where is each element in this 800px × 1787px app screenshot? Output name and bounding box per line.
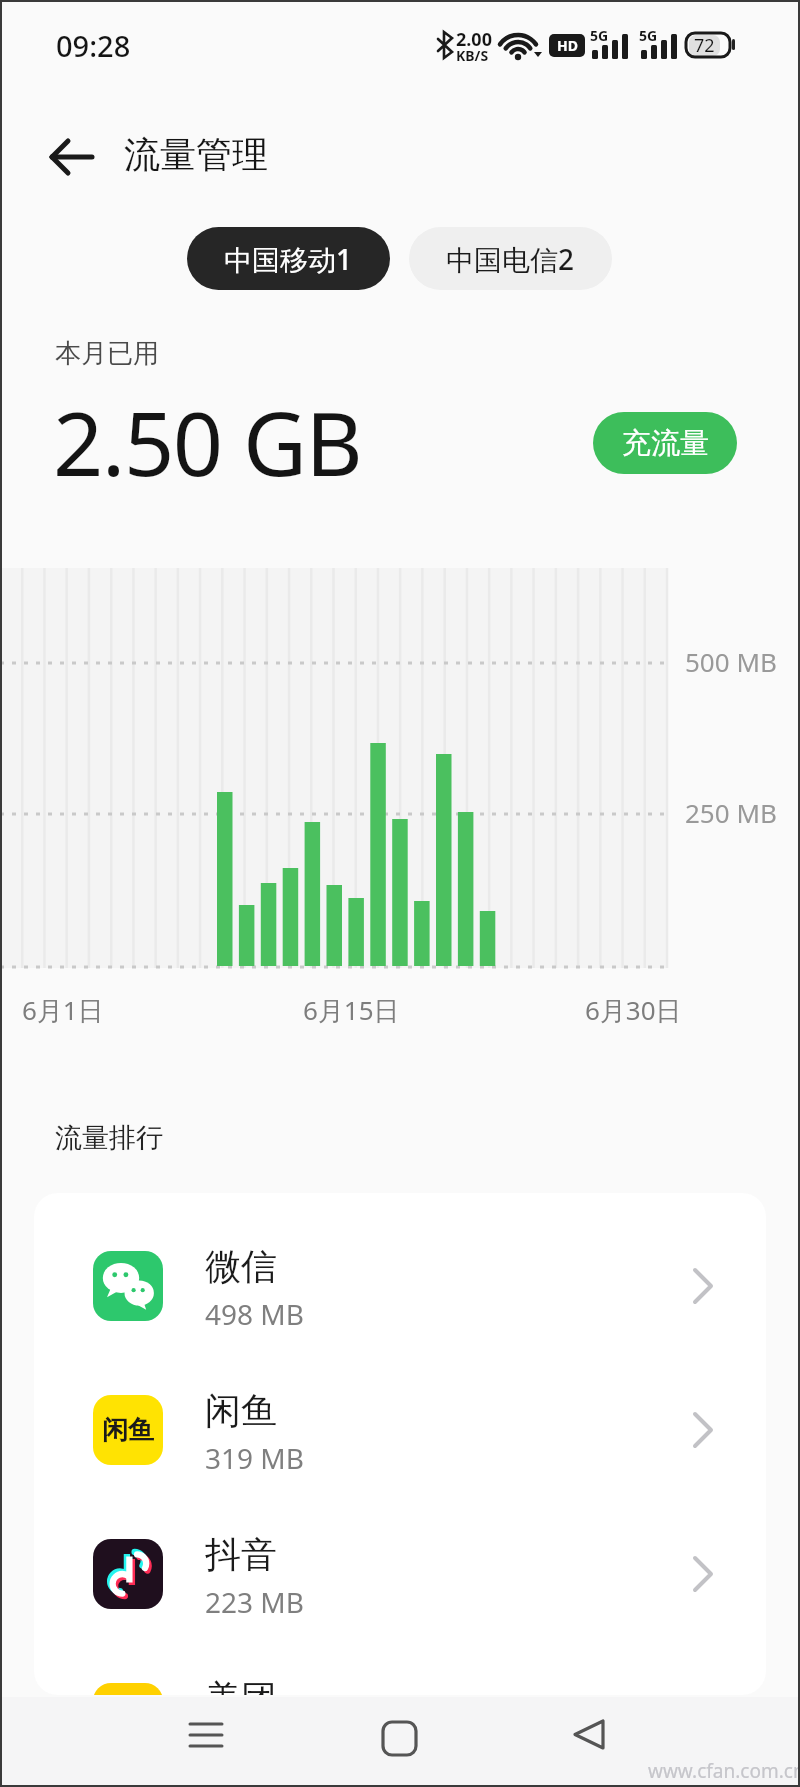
staticText: 498 MB <box>205 1295 304 1333</box>
staticText: 美团 <box>205 1676 277 1695</box>
button[interactable]: 中国移动1 <box>187 227 390 290</box>
staticText: 流量管理 <box>124 132 268 177</box>
staticText: 本月已用 <box>55 337 159 370</box>
button[interactable] <box>383 1717 416 1755</box>
staticText: 250 MB <box>685 795 777 830</box>
staticText: 2.00 <box>456 27 492 52</box>
button[interactable]: 微信 <box>34 1214 766 1358</box>
staticText: 223 MB <box>205 1583 304 1621</box>
staticText: 5G <box>639 26 658 45</box>
button[interactable]: 抖音 <box>34 1502 766 1646</box>
staticText: 闲鱼 <box>102 1414 154 1447</box>
button[interactable]: 中国电信2 <box>409 227 612 290</box>
staticText: 流量排行 <box>55 1121 163 1155</box>
staticText: 充流量 <box>622 425 709 462</box>
staticText: 72 <box>694 33 715 58</box>
button[interactable]: 充流量 <box>593 412 737 474</box>
staticText: 微信 <box>205 1244 277 1289</box>
staticText: 6月1日 <box>22 992 104 1028</box>
staticText: 中国电信2 <box>446 240 575 278</box>
staticText: 09:28 <box>56 26 131 65</box>
button[interactable] <box>190 1714 222 1756</box>
staticText: 闲鱼 <box>205 1388 277 1433</box>
staticText: 2.50 GB <box>53 382 362 502</box>
button[interactable] <box>573 1719 607 1750</box>
staticText: KB/S <box>456 46 489 65</box>
button[interactable] <box>50 138 94 176</box>
staticText: 5G <box>590 26 609 45</box>
staticText: 319 MB <box>205 1439 304 1477</box>
staticText: www.cfan.com.cn <box>648 1758 800 1784</box>
button[interactable]: 美团 <box>34 1646 766 1695</box>
staticText: HD <box>557 36 578 55</box>
staticText: 6月15日 <box>303 992 400 1028</box>
staticText: 500 MB <box>685 644 777 679</box>
staticText: 抖音 <box>205 1532 277 1577</box>
staticText: 6月30日 <box>585 992 682 1028</box>
button[interactable]: 闲鱼 <box>34 1358 766 1502</box>
staticText: 中国移动1 <box>224 240 353 278</box>
